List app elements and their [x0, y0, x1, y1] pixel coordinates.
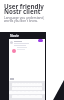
- staticText: Nostr: [10, 34, 19, 38]
- button[interactable]: Compose: [38, 39, 43, 42]
- staticText: Language you understand,: [4, 16, 45, 20]
- staticText: Nostr client: [4, 7, 41, 15]
- staticText: User friendly: [4, 2, 44, 10]
- staticText: words you don't know.: [4, 19, 38, 23]
